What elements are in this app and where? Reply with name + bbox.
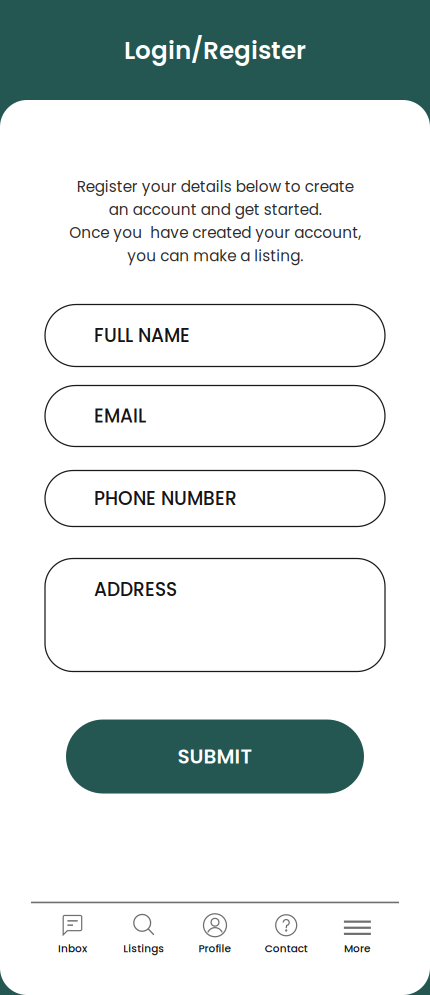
staticText: PHONE NUMBER (94, 485, 237, 511)
button[interactable]: Inbox (37, 912, 108, 956)
staticText: Login/Register (124, 33, 306, 67)
button[interactable]: Listings (108, 912, 179, 956)
button[interactable]: Contact (251, 912, 322, 956)
button[interactable]: EMAIL (45, 385, 385, 446)
staticText: Inbox (58, 941, 87, 956)
staticText: Register your details below to create an… (69, 176, 361, 266)
button[interactable]: SUBMIT (66, 719, 364, 793)
button[interactable]: Profile (179, 912, 251, 956)
button[interactable]: PHONE NUMBER (45, 470, 385, 526)
staticText: SUBMIT (177, 742, 252, 770)
staticText: EMAIL (94, 403, 146, 429)
button[interactable]: ADDRESS (45, 558, 385, 671)
staticText: Contact (265, 941, 308, 956)
staticText: Listings (123, 941, 164, 956)
button[interactable]: FULL NAME (45, 304, 385, 366)
staticText: ADDRESS (94, 576, 177, 602)
staticText: Profile (198, 941, 231, 956)
staticText: FULL NAME (94, 322, 190, 348)
staticText: More (344, 941, 371, 956)
button[interactable]: More (322, 912, 393, 956)
